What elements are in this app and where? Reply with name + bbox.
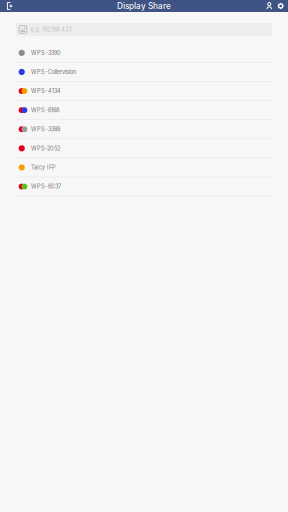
button[interactable]: WPS-3390 (16, 44, 272, 63)
staticText: e.g. 192.168.43.1 (30, 26, 71, 33)
staticText: WPS-6168 (31, 107, 59, 114)
button[interactable]: WPS-3388 (16, 120, 272, 139)
staticText: WPS-3390 (31, 49, 61, 56)
staticText: WPS-3388 (31, 126, 60, 133)
button[interactable]: WPS-6168 (16, 101, 272, 120)
button[interactable]: WPS-4134 (16, 82, 272, 101)
button[interactable]: WPS-2052 (16, 139, 272, 158)
button[interactable]: Settings (278, 0, 284, 12)
button[interactable]: WPS-Collervision (16, 63, 272, 82)
button[interactable]: e.g. 192.168.43.1 (16, 23, 272, 36)
staticText: WPS-4134 (31, 88, 61, 94)
staticText: WPS-2052 (31, 145, 60, 152)
staticText: WPS-Collervision (31, 69, 76, 75)
button[interactable]: WPS-6037 (16, 177, 272, 196)
button[interactable]: Account (267, 0, 272, 12)
staticText: WPS-6037 (31, 183, 61, 190)
button[interactable]: Log out (6, 0, 13, 12)
button[interactable]: Tarcy IFP (16, 158, 272, 177)
staticText: Tarcy IFP (31, 164, 56, 171)
staticText: Display Share (117, 1, 171, 11)
